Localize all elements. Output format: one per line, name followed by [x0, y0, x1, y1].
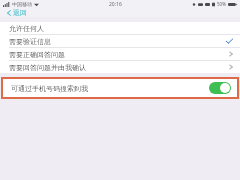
staticText: 20:16 [109, 1, 122, 8]
staticText: 需要正确回答问题 [9, 50, 65, 59]
button[interactable]: 可通过手机号码搜索到我 [3, 79, 237, 97]
button[interactable]: 允许任何人 [0, 22, 240, 35]
staticText: 需要回答问题并由我确认 [9, 63, 86, 72]
button[interactable]: 需要正确回答问题 [0, 48, 240, 61]
button[interactable]: Back [4, 8, 13, 17]
staticText: 中国移动 [12, 1, 32, 7]
staticText: 允许任何人 [9, 24, 44, 33]
staticText: 可通过手机号码搜索到我 [11, 84, 88, 93]
staticText: 50% [217, 1, 226, 7]
button[interactable]: Toggle phone search [209, 82, 231, 94]
staticText: 返回 [13, 8, 27, 17]
button[interactable]: 需要验证信息 [0, 35, 240, 48]
staticText: 需要验证信息 [9, 37, 51, 46]
button[interactable]: 需要回答问题并由我确认 [0, 61, 240, 73]
